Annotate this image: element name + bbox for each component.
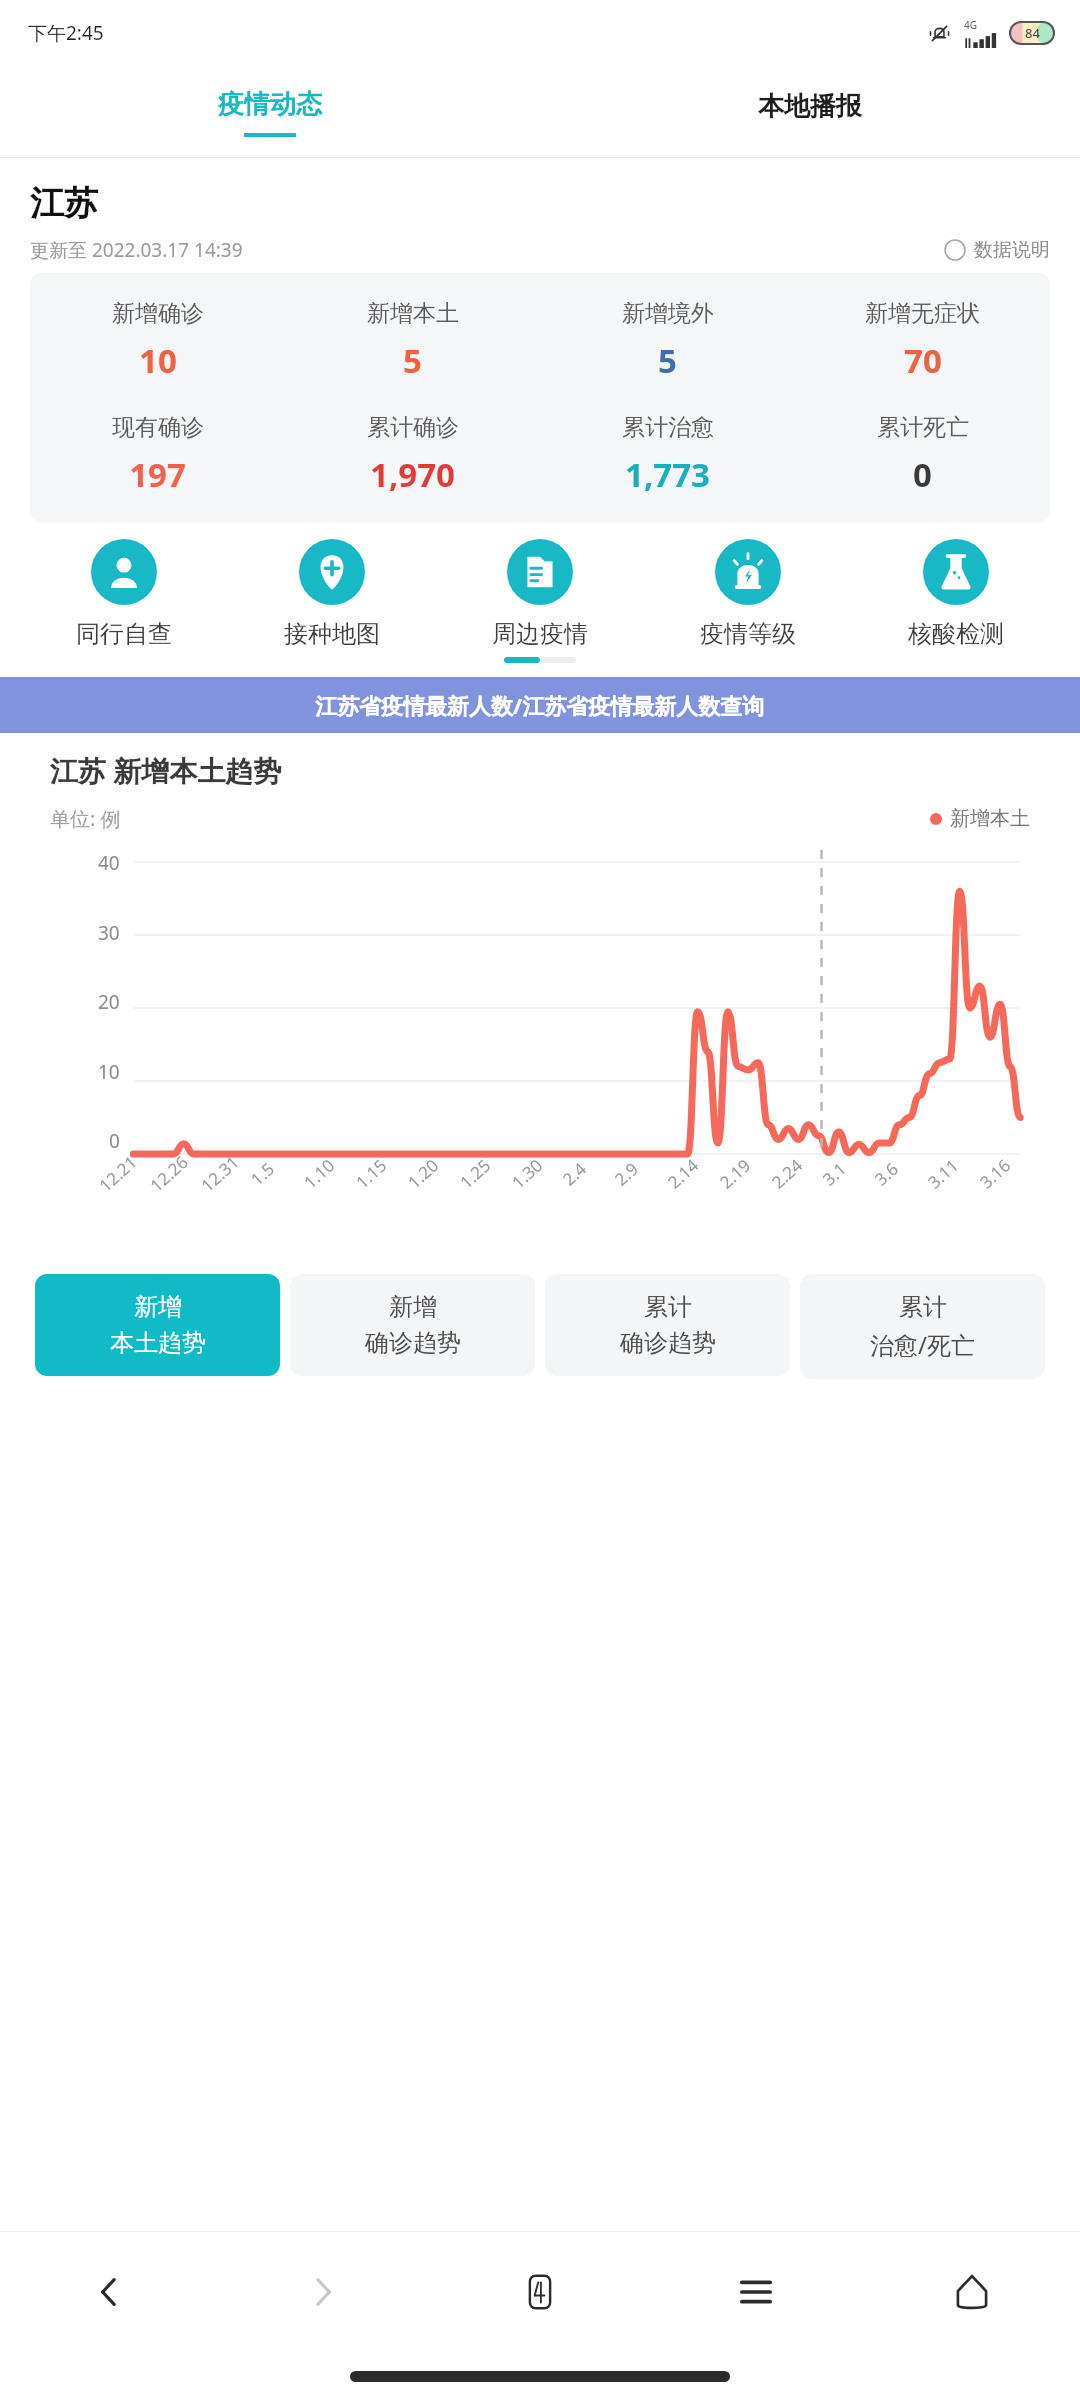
staticText: 新增 xyxy=(134,1292,182,1322)
staticText: 累计死亡 xyxy=(877,413,969,442)
staticText: 2.4 xyxy=(557,1157,591,1190)
staticText: 2.24 xyxy=(767,1154,807,1193)
staticText: 接种地图 xyxy=(284,619,380,649)
button[interactable]: 累计 xyxy=(800,1274,1045,1379)
staticText: 累计确诊 xyxy=(367,413,459,442)
staticText: 数据说明 xyxy=(974,238,1050,262)
staticText: 1.30 xyxy=(507,1154,547,1193)
button[interactable]: 新增 xyxy=(35,1274,280,1376)
staticText: 江苏省疫情最新人数/江苏省疫情最新人数查询 xyxy=(315,690,765,720)
staticText: 新增本土 xyxy=(950,806,1030,831)
staticText: 30 xyxy=(98,920,120,946)
staticText: 1.25 xyxy=(455,1154,495,1193)
staticText: 周边疫情 xyxy=(492,619,588,649)
staticText: 现有确诊 xyxy=(112,413,204,442)
button[interactable]: 同行自查 xyxy=(20,539,228,649)
staticText: 1.20 xyxy=(403,1154,443,1193)
staticText: 2:45 xyxy=(66,20,104,46)
button[interactable]: Tabs xyxy=(432,2232,648,2352)
button[interactable]: 现有确诊 xyxy=(30,413,285,497)
staticText: 1.15 xyxy=(351,1154,391,1193)
staticText: 1,773 xyxy=(625,452,710,497)
staticText: 70 xyxy=(904,338,942,383)
staticText: 下午 xyxy=(28,22,66,46)
staticText: 3.1 xyxy=(817,1157,851,1190)
button[interactable]: 接种地图 xyxy=(228,539,436,649)
staticText: 5 xyxy=(403,338,422,383)
staticText: 江苏 xyxy=(30,182,98,225)
button[interactable]: 累计 xyxy=(545,1274,790,1376)
staticText: 治愈/死亡 xyxy=(870,1328,975,1361)
staticText: 0 xyxy=(913,452,932,497)
staticText: 2.19 xyxy=(715,1154,755,1193)
staticText: 10 xyxy=(139,338,177,383)
staticText: 84 xyxy=(1025,24,1040,42)
staticText: 更新至 2022.03.17 14:39 xyxy=(30,237,243,263)
button[interactable]: 累计确诊 xyxy=(285,413,540,497)
button[interactable]: 本地播报 xyxy=(540,66,1080,158)
button[interactable]: 新增 xyxy=(290,1274,535,1376)
staticText: 10 xyxy=(98,1059,120,1085)
staticText: 1.5 xyxy=(245,1157,279,1190)
staticText: 2.9 xyxy=(609,1157,643,1190)
staticText: 3.6 xyxy=(869,1157,903,1190)
staticText: 12.21 xyxy=(94,1150,142,1197)
button[interactable]: 疫情等级 xyxy=(644,539,852,649)
staticText: 累计 xyxy=(644,1292,692,1322)
staticText: 疫情动态 xyxy=(218,88,322,121)
staticText: 江苏 新增本土趋势 xyxy=(50,751,282,789)
staticText: 累计治愈 xyxy=(622,413,714,442)
staticText: 疫情等级 xyxy=(700,619,796,649)
button[interactable]: 累计治愈 xyxy=(540,413,795,497)
button[interactable]: 新增无症状 xyxy=(795,299,1050,383)
staticText: 3.16 xyxy=(975,1154,1015,1193)
staticText: 单位: 例 xyxy=(50,805,121,832)
staticText: 4G xyxy=(964,18,977,32)
staticText: 确诊趋势 xyxy=(620,1328,716,1358)
button[interactable]: Menu xyxy=(648,2232,864,2352)
staticText: 累计 xyxy=(899,1292,947,1322)
staticText: 确诊趋势 xyxy=(365,1328,461,1358)
staticText: 2.14 xyxy=(663,1154,703,1193)
staticText: 新增本土 xyxy=(367,299,459,328)
staticText: 1,970 xyxy=(370,452,455,497)
staticText: 0 xyxy=(109,1128,120,1154)
button[interactable]: 周边疫情 xyxy=(436,539,644,649)
button[interactable]: Back xyxy=(0,2232,216,2352)
staticText: 5 xyxy=(658,338,677,383)
button[interactable]: Forward xyxy=(216,2232,432,2352)
staticText: 新增无症状 xyxy=(865,299,980,328)
staticText: 本土趋势 xyxy=(110,1328,206,1358)
staticText: 12.26 xyxy=(145,1150,193,1197)
staticText: 同行自查 xyxy=(76,619,172,649)
staticText: 新增确诊 xyxy=(112,299,204,328)
staticText: 197 xyxy=(129,452,186,497)
staticText: 40 xyxy=(98,850,120,876)
button[interactable]: 核酸检测 xyxy=(852,539,1060,649)
button[interactable]: 数据说明 xyxy=(944,238,1050,262)
staticText: 新增 xyxy=(389,1292,437,1322)
staticText: 新增境外 xyxy=(622,299,714,328)
staticText: 核酸检测 xyxy=(908,619,1004,649)
button[interactable]: 新增确诊 xyxy=(30,299,285,383)
staticText: 3.11 xyxy=(923,1154,963,1193)
button[interactable]: 累计死亡 xyxy=(795,413,1050,497)
staticText: 12.31 xyxy=(196,1150,244,1197)
staticText: 1.10 xyxy=(299,1154,339,1193)
button[interactable]: 疫情动态 xyxy=(0,66,540,158)
staticText: 20 xyxy=(98,989,120,1015)
button[interactable]: 新增境外 xyxy=(540,299,795,383)
staticText: 本地播报 xyxy=(758,90,862,123)
button[interactable]: 新增本土 xyxy=(285,299,540,383)
button[interactable]: Home xyxy=(864,2232,1080,2352)
